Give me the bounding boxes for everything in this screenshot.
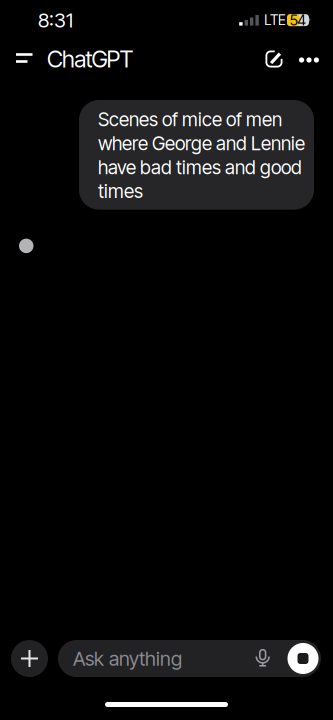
button[interactable]: Dictate bbox=[241, 640, 285, 677]
button[interactable]: Sidebar bbox=[8, 39, 40, 79]
button[interactable]: New chat bbox=[255, 39, 293, 79]
staticText: Ask anything bbox=[73, 647, 182, 670]
button[interactable]: More options bbox=[293, 39, 325, 79]
staticText: LTE bbox=[264, 12, 286, 28]
button[interactable]: Stop bbox=[285, 640, 321, 677]
staticText: 54 bbox=[290, 11, 306, 29]
staticText: Scenes of mice of men where George and L… bbox=[98, 108, 305, 203]
staticText: ChatGPT bbox=[47, 45, 134, 73]
staticText: 8:31 bbox=[38, 8, 73, 32]
button[interactable]: Add attachment bbox=[11, 640, 48, 677]
